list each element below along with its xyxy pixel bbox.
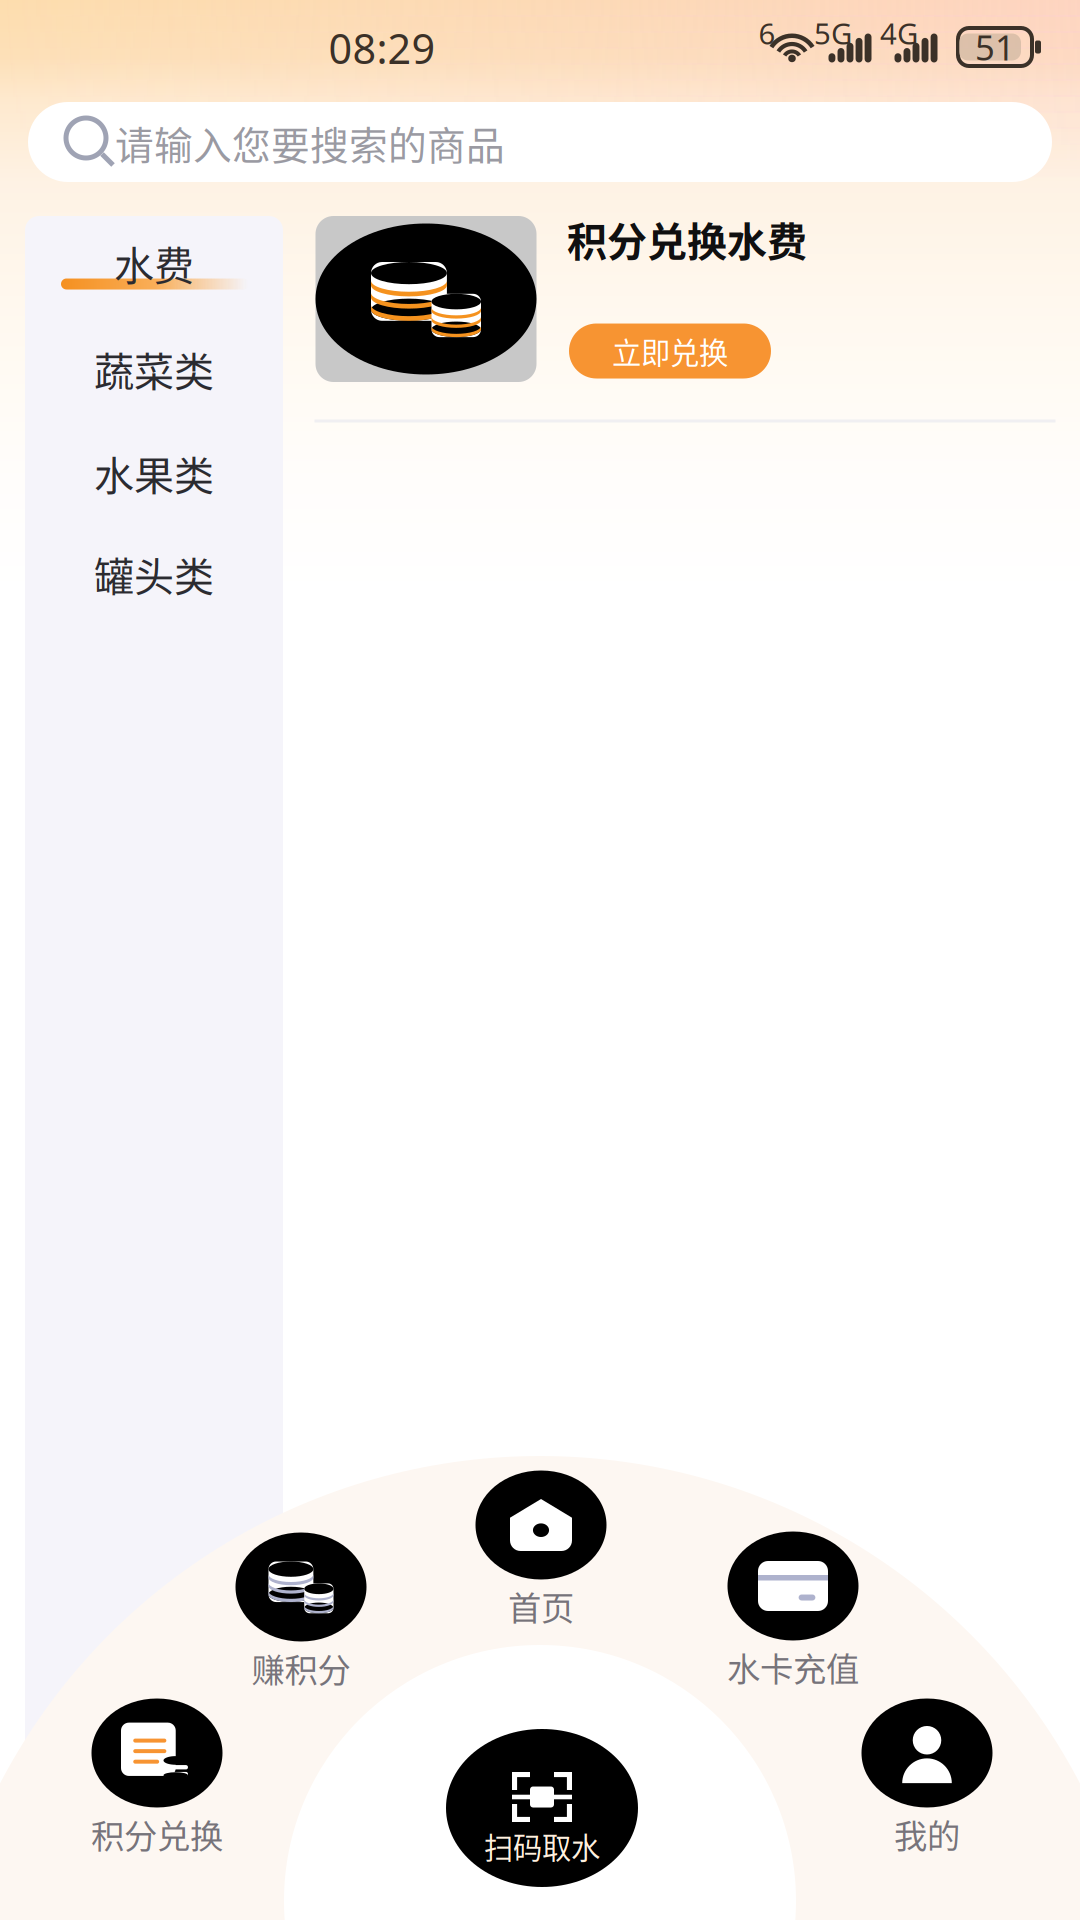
button[interactable]: 赚积分 <box>186 1527 416 1707</box>
staticText: 水费 <box>114 234 194 292</box>
button[interactable]: 积分兑换水费 <box>0 0 1080 1920</box>
button[interactable]: 请输入您要搜索的商品 <box>0 0 1080 1920</box>
button[interactable]: 水费 <box>25 212 283 314</box>
staticText: 51 <box>975 23 1015 71</box>
staticText: 立即兑换 <box>612 330 728 372</box>
staticText: 扫码取水 <box>484 1825 600 1867</box>
staticText: 罐头类 <box>94 545 214 603</box>
staticText: 积分兑换水费 <box>567 210 807 268</box>
staticText: 水果类 <box>94 444 214 502</box>
staticText: 蔬菜类 <box>94 340 214 398</box>
staticText: 首页 <box>508 1582 574 1630</box>
button[interactable]: 首页 <box>426 1465 656 1645</box>
staticText: 6 <box>758 13 775 53</box>
staticText: 水卡充值 <box>727 1643 859 1691</box>
staticText: 请输入您要搜索的商品 <box>115 115 505 171</box>
button[interactable]: 蔬菜类 <box>25 318 283 420</box>
staticText: 赚积分 <box>251 1644 350 1692</box>
staticText: 我的 <box>894 1810 960 1858</box>
staticText: 4G <box>880 13 918 53</box>
staticText: 5G <box>814 13 852 53</box>
button[interactable]: 我的 <box>812 1693 1042 1873</box>
button[interactable]: 扫码取水 <box>446 1729 638 1887</box>
button[interactable]: 水卡充值 <box>678 1526 908 1706</box>
staticText: 08:29 <box>328 20 435 76</box>
button[interactable]: 积分兑换 <box>42 1693 272 1873</box>
button[interactable]: 罐头类 <box>25 523 283 625</box>
staticText: 积分兑换 <box>91 1810 223 1858</box>
button[interactable]: 水果类 <box>25 422 283 524</box>
